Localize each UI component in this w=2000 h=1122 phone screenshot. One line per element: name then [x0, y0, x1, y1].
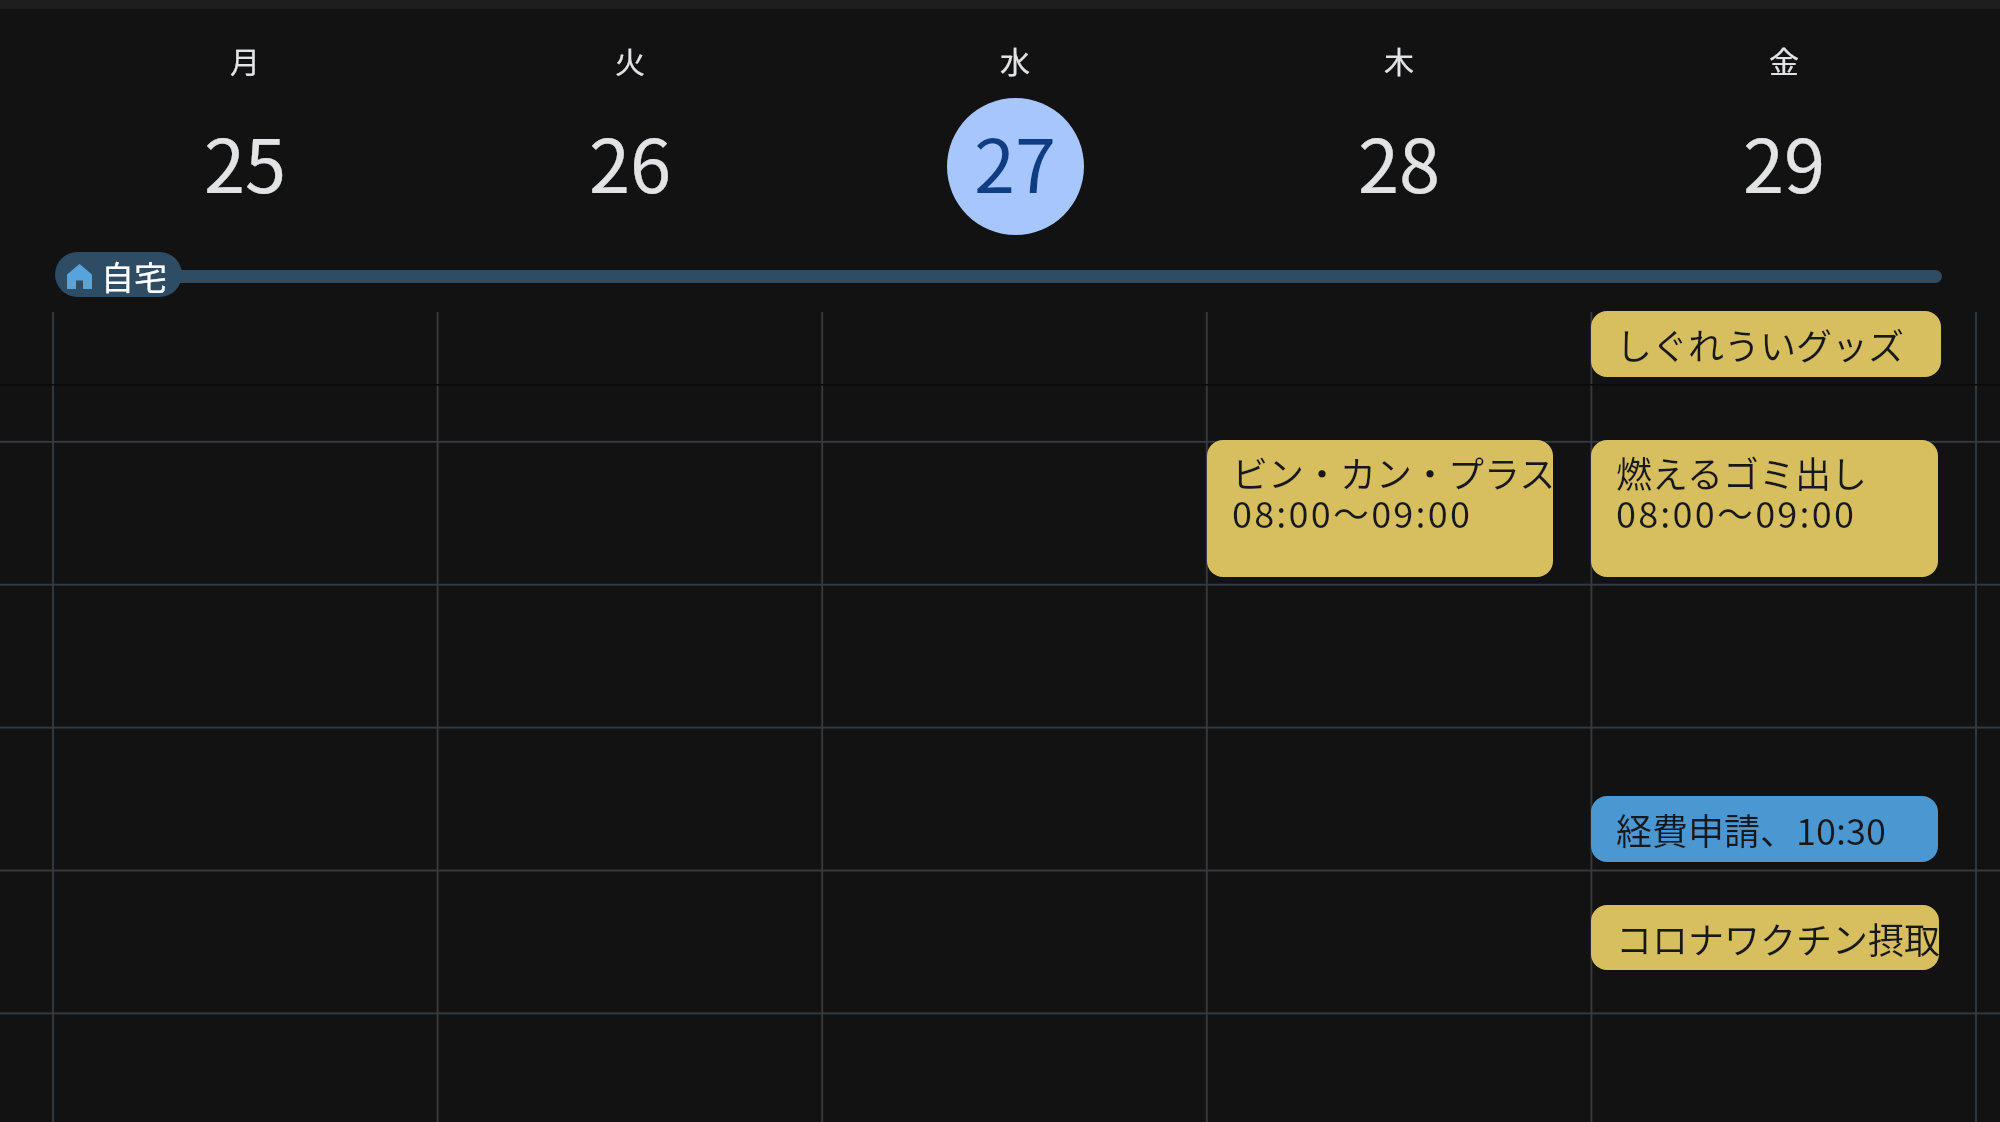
staticText: しぐれういグッズ: [1616, 328, 1905, 368]
staticText: 経費申請、10:30: [1616, 813, 1886, 853]
staticText: 水: [1000, 38, 1030, 81]
staticText: 25: [204, 107, 287, 214]
staticText: 28: [1358, 107, 1441, 214]
staticText: 27: [974, 107, 1057, 214]
button[interactable]: 火: [540, 25, 720, 240]
staticText: 08:00〜09:00: [1232, 496, 1473, 536]
button[interactable]: ビン・カン・プラス: [1207, 440, 1553, 577]
button[interactable]: Home: [55, 252, 182, 297]
staticText: 燃えるゴミ出し: [1616, 456, 1867, 496]
staticText: 金: [1769, 38, 1799, 81]
button[interactable]: コロナワクチン摂取: [1591, 905, 1939, 970]
button[interactable]: 金: [1694, 25, 1874, 240]
staticText: 木: [1384, 38, 1414, 81]
staticText: ビン・カン・プラス: [1232, 456, 1553, 496]
button[interactable]: 経費申請、10:30: [1591, 796, 1938, 862]
button[interactable]: 木: [1309, 25, 1489, 240]
staticText: 月: [230, 38, 260, 81]
button[interactable]: 月: [155, 25, 335, 240]
staticText: 自宅: [101, 252, 167, 297]
button[interactable]: 燃えるゴミ出し: [1591, 440, 1938, 577]
button[interactable]: 水: [925, 25, 1105, 240]
staticText: コロナワクチン摂取: [1616, 922, 1939, 962]
staticText: 08:00〜09:00: [1616, 496, 1857, 536]
staticText: 26: [589, 107, 672, 214]
staticText: 火: [615, 38, 645, 81]
staticText: 29: [1743, 107, 1826, 214]
button[interactable]: しぐれういグッズ: [1591, 311, 1941, 377]
other: Home: [67, 264, 92, 289]
